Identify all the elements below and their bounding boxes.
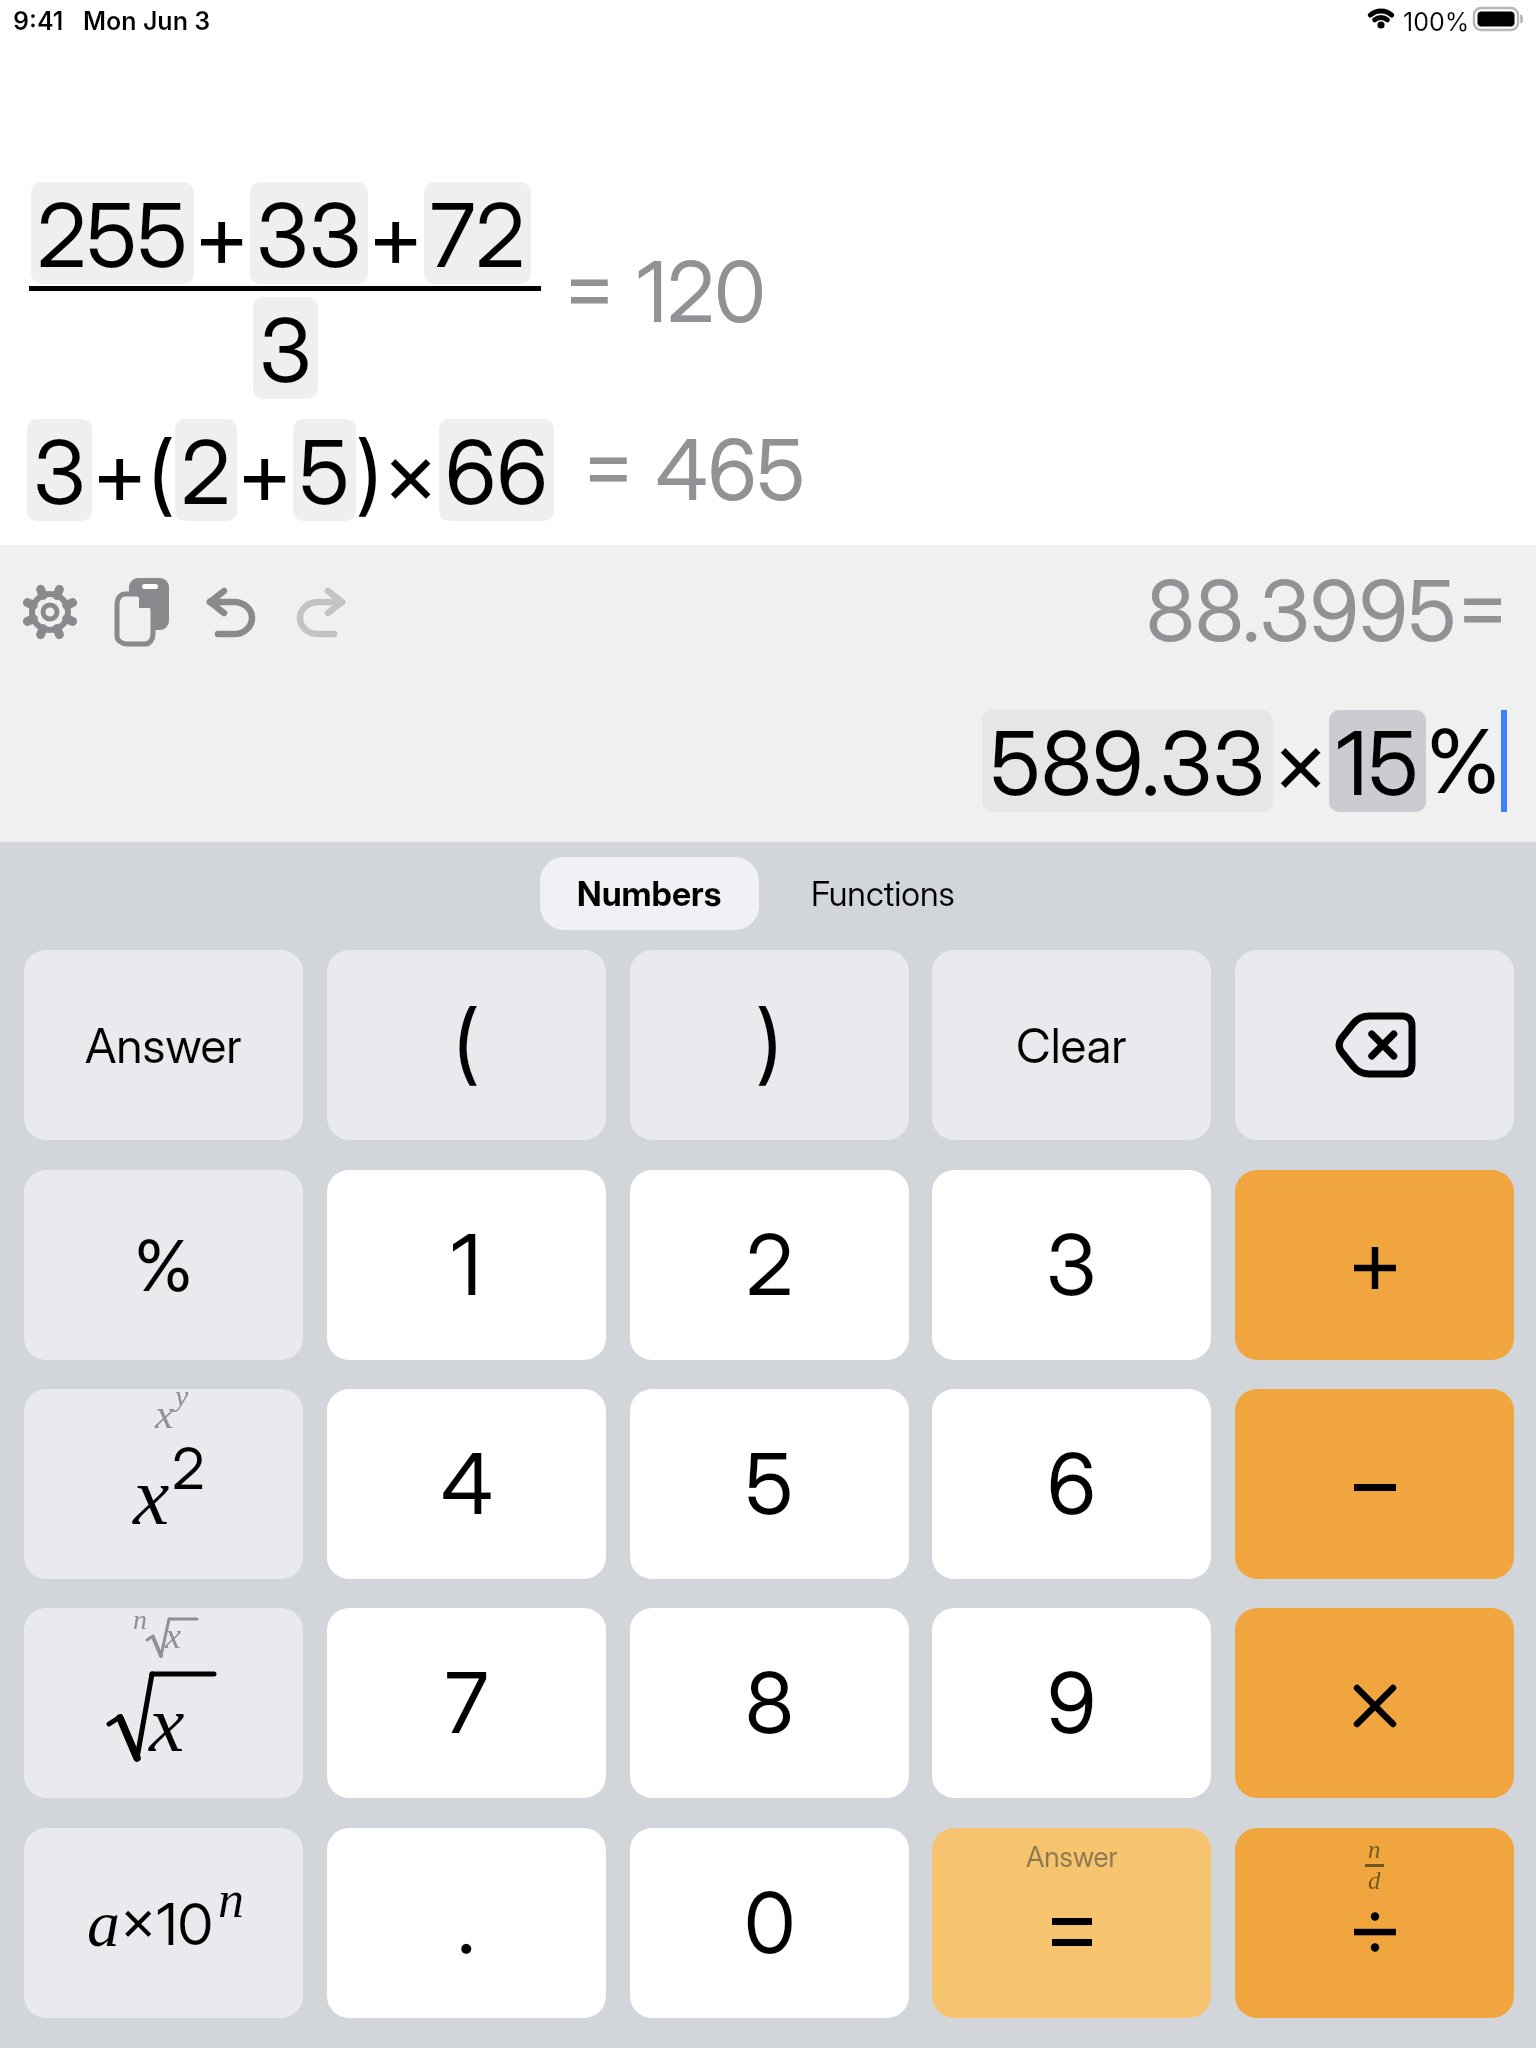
staticText: .	[457, 1872, 476, 1974]
button[interactable]	[114, 578, 172, 646]
staticText: 33	[256, 182, 362, 284]
button[interactable]: n	[1235, 1828, 1514, 2018]
button[interactable]: )	[630, 950, 909, 1140]
staticText: a	[87, 1887, 120, 1960]
staticText: 72	[430, 182, 525, 284]
staticText: 1	[451, 1214, 482, 1316]
staticText: 255	[37, 182, 188, 284]
staticText: y	[175, 1389, 189, 1412]
button[interactable]	[22, 584, 78, 640]
button[interactable]: x	[24, 1389, 303, 1579]
staticText: +	[368, 182, 424, 284]
button[interactable]: 0	[630, 1828, 909, 2018]
button[interactable]: Functions	[760, 857, 1005, 930]
button[interactable]	[1235, 1608, 1514, 1798]
button[interactable]: 8	[630, 1608, 909, 1798]
staticText: 66	[445, 419, 548, 521]
staticText: x	[133, 1451, 170, 1542]
staticText: Functions	[811, 873, 955, 914]
button[interactable]: 3	[932, 1170, 1211, 1360]
staticText: n	[1368, 1836, 1381, 1864]
button[interactable]: 2	[630, 1170, 909, 1360]
staticText: Answer	[1026, 1840, 1118, 1874]
staticText: 2	[746, 1214, 794, 1316]
button[interactable]: Clear	[932, 950, 1211, 1140]
staticText: Numbers	[577, 873, 722, 914]
staticText: x	[165, 1616, 181, 1656]
staticText: 88.3995=	[1146, 560, 1510, 662]
button[interactable]: Answer	[932, 1828, 1211, 2018]
button[interactable]	[1235, 1389, 1514, 1579]
staticText: 5	[745, 1433, 794, 1535]
staticText: 15	[1336, 710, 1419, 812]
staticText: ×	[1273, 708, 1329, 814]
staticText: Mon Jun 3	[83, 6, 211, 36]
staticText: n	[133, 1608, 147, 1635]
button[interactable]: .	[327, 1828, 606, 2018]
staticText: Clear	[1016, 1016, 1127, 1074]
staticText: %	[1426, 708, 1501, 814]
button[interactable]: 1	[327, 1170, 606, 1360]
staticText: 5	[299, 419, 350, 521]
staticText: x	[155, 1391, 174, 1438]
staticText: 4	[441, 1433, 493, 1535]
staticText: 8	[745, 1652, 794, 1754]
staticText: +	[194, 182, 250, 284]
staticText: 100%	[1403, 7, 1470, 37]
staticText: Answer	[85, 1016, 242, 1074]
staticText: x	[149, 1680, 185, 1769]
button[interactable]: 5	[630, 1389, 909, 1579]
button[interactable]	[1235, 950, 1514, 1140]
staticText: n	[218, 1871, 244, 1929]
staticText: +	[237, 419, 293, 521]
button[interactable]: (	[327, 950, 606, 1140]
button[interactable]: Answer	[24, 950, 303, 1140]
staticText: d	[1368, 1867, 1381, 1895]
staticText: )	[756, 988, 783, 1094]
staticText: = 465	[582, 419, 806, 521]
button[interactable]: Numbers	[540, 857, 759, 930]
staticText: 0	[744, 1872, 796, 1974]
staticText: 9	[1047, 1652, 1097, 1754]
staticText: )	[356, 419, 383, 521]
staticText: 589.33	[990, 710, 1265, 812]
staticText: (	[148, 419, 175, 521]
staticText: 2	[172, 1433, 205, 1503]
button[interactable]	[1235, 1170, 1514, 1360]
staticText: 3	[33, 419, 86, 521]
staticText: +	[92, 419, 148, 521]
staticText: (	[453, 988, 480, 1094]
button[interactable]	[206, 588, 258, 638]
staticText: 7	[445, 1652, 489, 1754]
button[interactable]: 9	[932, 1608, 1211, 1798]
button[interactable]: 4	[327, 1389, 606, 1579]
staticText: 3	[1046, 1214, 1097, 1316]
button[interactable]	[294, 588, 346, 638]
button[interactable]: %	[24, 1170, 303, 1360]
staticText: 3	[259, 297, 312, 399]
staticText: = 120	[563, 241, 766, 343]
button[interactable]: 6	[932, 1389, 1211, 1579]
button[interactable]: a	[24, 1828, 303, 2018]
staticText: ×10	[120, 1889, 214, 1959]
button[interactable]: 7	[327, 1608, 606, 1798]
staticText: 6	[1047, 1433, 1097, 1535]
staticText: 2	[181, 419, 231, 521]
staticText: ×	[383, 419, 439, 521]
staticText: 9:41	[13, 6, 64, 36]
staticText: %	[134, 1223, 194, 1308]
button[interactable]: n	[24, 1608, 303, 1798]
